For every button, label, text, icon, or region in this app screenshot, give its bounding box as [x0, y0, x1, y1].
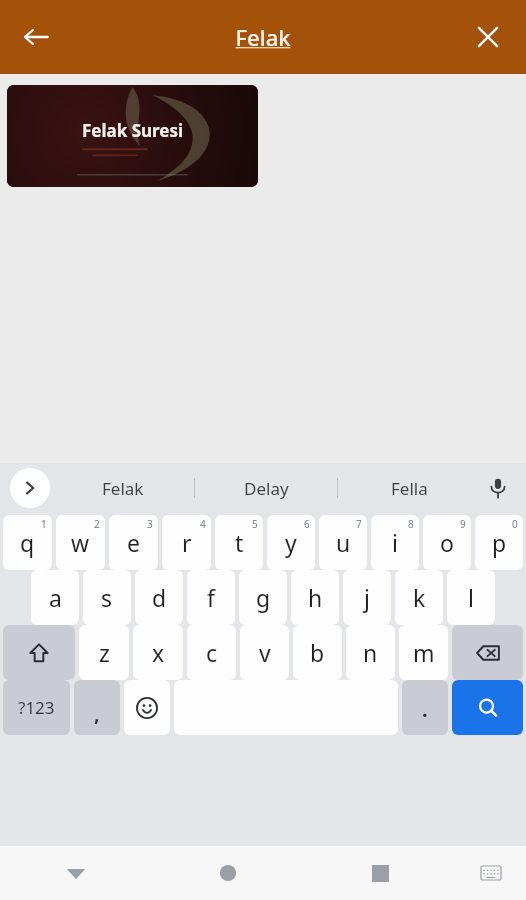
staticText: l: [468, 582, 474, 613]
button[interactable]: d: [135, 570, 183, 625]
button[interactable]: Felak: [52, 463, 194, 513]
button[interactable]: u: [319, 515, 367, 570]
staticText: r: [182, 527, 192, 558]
staticText: j: [364, 582, 370, 613]
button[interactable]: k: [395, 570, 443, 625]
staticText: 0: [512, 517, 518, 531]
staticText: 6: [304, 517, 310, 531]
staticText: 2: [94, 517, 100, 531]
button[interactable]: y: [267, 515, 315, 570]
button[interactable]: Fella: [338, 463, 480, 513]
staticText: s: [101, 582, 113, 613]
staticText: x: [152, 637, 165, 668]
staticText: y: [285, 527, 297, 558]
button[interactable]: Recents: [304, 846, 456, 900]
staticText: u: [336, 527, 351, 558]
button[interactable]: Backspace: [452, 625, 523, 680]
staticText: ?123: [18, 696, 55, 719]
staticText: .: [422, 696, 428, 723]
button[interactable]: Hide keyboard: [0, 846, 152, 900]
staticText: g: [256, 582, 271, 613]
staticText: m: [413, 637, 435, 668]
button[interactable]: Search: [452, 680, 523, 735]
staticText: 1: [41, 517, 47, 531]
staticText: k: [413, 582, 426, 613]
button[interactable]: n: [346, 625, 395, 680]
button[interactable]: l: [447, 570, 495, 625]
staticText: 3: [147, 517, 153, 531]
button[interactable]: Back: [10, 11, 62, 63]
staticText: n: [363, 637, 378, 668]
button[interactable]: .: [402, 680, 448, 735]
button[interactable]: Shift: [3, 625, 75, 680]
button[interactable]: q: [3, 515, 52, 570]
button[interactable]: a: [31, 570, 79, 625]
staticText: v: [259, 637, 271, 668]
staticText: a: [49, 582, 62, 613]
button[interactable]: Emoji: [124, 680, 170, 735]
button[interactable]: m: [399, 625, 448, 680]
button[interactable]: i: [371, 515, 419, 570]
staticText: 5: [252, 517, 258, 531]
staticText: f: [207, 582, 215, 613]
staticText: 4: [200, 517, 206, 531]
staticText: ,: [94, 700, 100, 727]
button[interactable]: c: [187, 625, 236, 680]
button[interactable]: w: [56, 515, 105, 570]
button[interactable]: x: [133, 625, 183, 680]
staticText: p: [492, 527, 507, 558]
button[interactable]: ,: [74, 680, 120, 735]
button[interactable]: t: [215, 515, 263, 570]
button[interactable]: f: [187, 570, 235, 625]
button[interactable]: ?123: [3, 680, 70, 735]
button[interactable]: Switch keyboard: [456, 846, 526, 900]
button[interactable]: e: [109, 515, 158, 570]
staticText: b: [310, 637, 325, 668]
button[interactable]: v: [240, 625, 289, 680]
staticText: Felak Suresi: [82, 119, 184, 142]
staticText: w: [71, 527, 90, 558]
button[interactable]: Close: [462, 11, 514, 63]
button[interactable]: Voice input: [476, 466, 520, 510]
staticText: 7: [356, 517, 362, 531]
staticText: q: [20, 527, 35, 558]
staticText: z: [99, 637, 110, 668]
staticText: Delay: [244, 477, 289, 500]
staticText: Felak: [102, 477, 144, 500]
staticText: 8: [408, 517, 414, 531]
button[interactable]: p: [475, 515, 523, 570]
staticText: d: [152, 582, 167, 613]
staticText: Fella: [391, 477, 428, 500]
staticText: c: [206, 637, 218, 668]
button[interactable]: z: [79, 625, 129, 680]
button[interactable]: o: [423, 515, 471, 570]
button[interactable]: More suggestions: [10, 468, 50, 508]
button[interactable]: j: [343, 570, 391, 625]
staticText: t: [235, 527, 244, 558]
button[interactable]: Home: [152, 846, 304, 900]
staticText: o: [440, 527, 454, 558]
button[interactable]: h: [291, 570, 339, 625]
staticText: 9: [460, 517, 466, 531]
staticText: e: [127, 527, 140, 558]
button[interactable]: Felak: [235, 22, 291, 52]
button[interactable]: b: [293, 625, 342, 680]
button[interactable]: r: [162, 515, 211, 570]
staticText: i: [392, 527, 398, 558]
button[interactable]: Delay: [195, 463, 337, 513]
button[interactable]: s: [83, 570, 131, 625]
button[interactable]: Felak Suresi: [7, 85, 258, 187]
staticText: Felak: [235, 22, 291, 52]
button[interactable]: g: [239, 570, 287, 625]
staticText: h: [308, 582, 323, 613]
